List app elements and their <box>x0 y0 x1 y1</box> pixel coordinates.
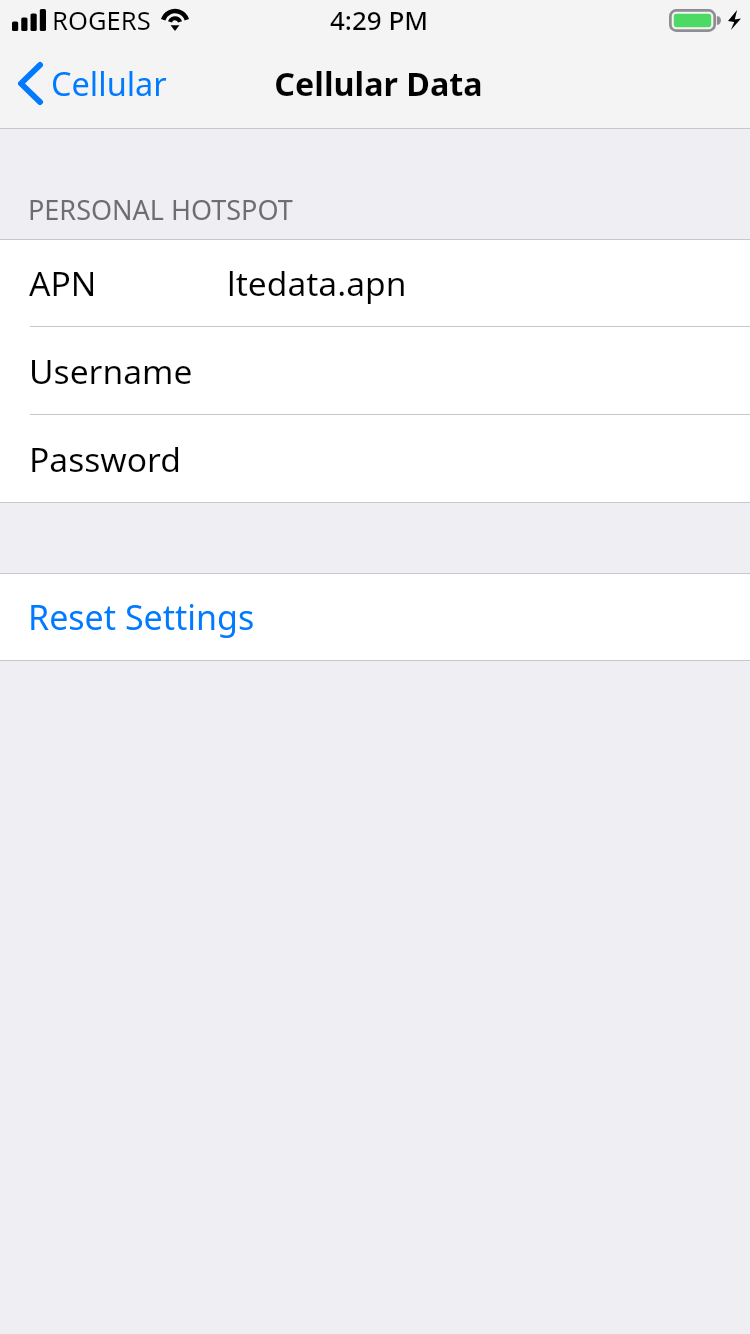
other: Wi-Fi connected <box>160 7 190 32</box>
staticText: ltedata.apn <box>227 260 407 306</box>
button[interactable]: Back to Cellular <box>0 53 183 113</box>
staticText: 4:29 PM <box>330 2 429 37</box>
button[interactable]: Password <box>0 415 750 502</box>
staticText: Username <box>29 348 227 394</box>
staticText: Reset Settings <box>28 594 255 640</box>
staticText: ROGERS <box>52 3 151 38</box>
staticText: PERSONAL HOTSPOT <box>28 191 293 228</box>
other: Battery full, charging <box>669 9 721 32</box>
other: Cellular signal strength <box>12 9 46 31</box>
staticText: Cellular Data <box>274 61 483 105</box>
button[interactable]: APN <box>0 240 750 326</box>
staticText: APN <box>29 260 227 306</box>
staticText: Password <box>29 436 227 482</box>
button[interactable]: Username <box>0 327 750 414</box>
button[interactable]: Reset Settings <box>0 574 750 660</box>
staticText: Cellular <box>51 61 167 105</box>
